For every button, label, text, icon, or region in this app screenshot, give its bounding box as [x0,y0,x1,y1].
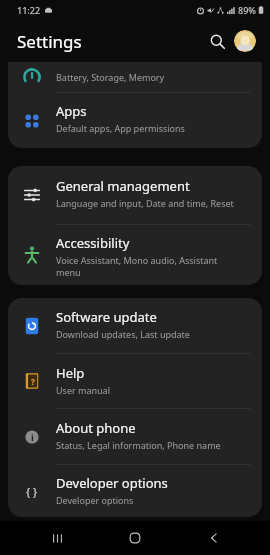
button[interactable]: General management [8,166,262,224]
button[interactable]: Home [113,521,157,555]
button[interactable]: Search [202,26,232,56]
staticText: Default apps, App permissions [56,122,185,134]
staticText: Help [56,364,85,382]
staticText: ? [31,376,35,387]
staticText: 11:22 [17,4,41,16]
staticText: 89% [238,4,256,16]
staticText: User manual [56,384,110,396]
staticText: Download updates, Last update [56,328,190,340]
staticText: i [31,431,34,443]
staticText: Status, Legal information, Phone name [56,439,221,451]
staticText: Developer options [56,494,134,506]
button[interactable]: i [8,409,262,464]
button[interactable]: Software update [8,298,262,353]
staticText: Apps [56,102,87,120]
staticText: Voice Assistant, Mono audio, Assistant [56,254,218,266]
button[interactable]: { } [8,465,262,517]
button[interactable]: Battery, Storage, Memory [8,62,262,92]
staticText: Battery, Storage, Memory [56,71,165,83]
staticText: Developer options [56,474,168,492]
button[interactable]: ? [8,354,262,408]
button[interactable]: Back [192,521,236,555]
staticText: General management [56,177,190,195]
staticText: Settings [17,30,82,53]
staticText: { } [26,484,38,499]
button[interactable]: Accessibility [8,225,262,285]
button[interactable]: Apps [8,93,262,148]
staticText: menu [56,266,81,278]
staticText: About phone [56,419,136,437]
staticText: Accessibility [56,234,130,252]
staticText: Language and input, Date and time, Reset [56,197,234,209]
staticText: Software update [56,308,157,326]
button[interactable]: Account [234,30,256,52]
button[interactable]: Recents [35,521,79,555]
